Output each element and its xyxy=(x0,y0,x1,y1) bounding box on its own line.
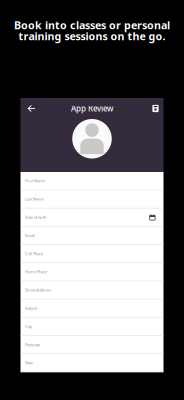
button[interactable]: Save xyxy=(145,98,165,119)
button[interactable]: Street Address xyxy=(20,281,163,299)
staticText: Postcode xyxy=(25,342,40,347)
staticText: Suburb xyxy=(25,305,37,311)
button[interactable]: Postcode xyxy=(20,336,163,354)
button[interactable]: City xyxy=(20,318,163,336)
staticText: training sessions on the go. xyxy=(18,29,165,43)
button[interactable]: Suburb xyxy=(20,299,163,318)
staticText: Date of birth xyxy=(25,214,46,220)
button[interactable]: Back xyxy=(21,98,41,119)
staticText: State xyxy=(25,360,33,365)
staticText: Last Name xyxy=(25,196,44,202)
button[interactable]: Last Name xyxy=(20,190,163,208)
staticText: City xyxy=(25,324,32,329)
staticText: Street Address xyxy=(25,287,51,293)
button[interactable]: State xyxy=(20,354,163,372)
staticText: Book into classes or personal xyxy=(14,18,170,32)
staticText: First Name xyxy=(25,178,45,183)
button[interactable]: First Name xyxy=(20,172,163,190)
button[interactable]: Home Phone xyxy=(20,263,163,281)
button[interactable]: Cell Phone xyxy=(20,245,163,263)
button[interactable]: Email xyxy=(20,227,163,245)
staticText: Email xyxy=(25,233,35,238)
staticText: Home Phone xyxy=(25,269,47,274)
staticText: App Review xyxy=(71,103,113,114)
button[interactable]: Date of birth xyxy=(20,208,163,227)
staticText: Cell Phone xyxy=(25,251,43,256)
